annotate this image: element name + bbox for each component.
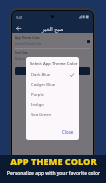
staticText: APP THEME COLOR xyxy=(10,155,97,168)
button[interactable]: Sea Green xyxy=(26,110,79,120)
staticText: Sea Green xyxy=(31,112,52,118)
button[interactable]: App Theme Color xyxy=(12,34,93,48)
button[interactable]: Indigo xyxy=(26,100,79,110)
button[interactable]: Back xyxy=(14,24,23,33)
button[interactable]: Cadger Blue xyxy=(26,80,79,90)
staticText: Dark Blue xyxy=(31,72,51,78)
staticText: Medium xyxy=(15,57,26,61)
staticText: Font Size xyxy=(15,51,28,55)
button[interactable]: Dark Blue xyxy=(26,70,79,80)
staticText: Close xyxy=(62,129,74,135)
staticText: Indigo xyxy=(31,102,44,108)
button[interactable]: Font Size xyxy=(12,49,93,63)
staticText: App Theme Color xyxy=(15,36,40,40)
staticText: Cadger Blue xyxy=(31,82,56,88)
button[interactable]: Close xyxy=(57,127,79,137)
button[interactable]: Purple xyxy=(26,90,79,100)
button[interactable] xyxy=(15,67,90,75)
staticText: Purple xyxy=(31,92,44,98)
staticText: Personalize app with your favorite color xyxy=(7,170,100,177)
staticText: صبح الخير xyxy=(42,25,64,32)
staticText: 9:41 xyxy=(16,15,23,20)
staticText: Selected Theme Color xyxy=(15,42,42,46)
staticText: Select App Theme Color xyxy=(30,61,78,67)
